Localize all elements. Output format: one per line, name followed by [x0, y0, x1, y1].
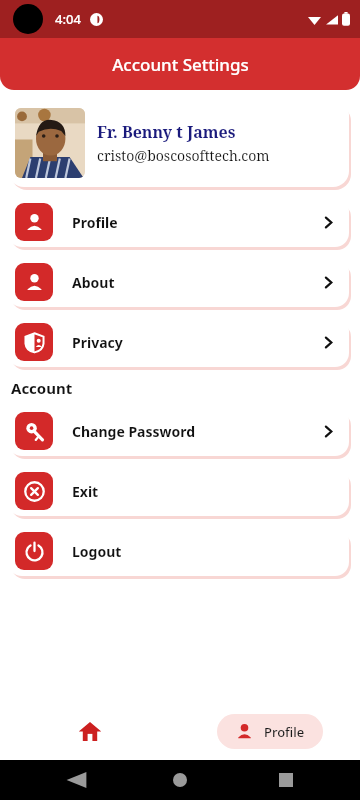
staticText: Logout	[72, 542, 122, 561]
staticText: Fr. Benny t James	[97, 121, 236, 143]
staticText: Privacy	[72, 333, 123, 352]
button[interactable]: Logout	[0, 526, 360, 576]
button[interactable]: Profile	[217, 714, 323, 749]
button[interactable]: Exit	[0, 466, 360, 516]
staticText: Profile	[72, 213, 118, 232]
button[interactable]: Profile	[0, 197, 360, 247]
button[interactable]: Home	[0, 702, 180, 760]
staticText: Change Password	[72, 422, 196, 441]
button[interactable]: About	[0, 257, 360, 307]
button[interactable]: Change Password	[0, 406, 360, 456]
staticText: cristo@boscosofttech.com	[97, 146, 270, 165]
staticText: Profile	[264, 723, 305, 741]
button[interactable]: Privacy	[0, 317, 360, 367]
staticText: About	[72, 273, 115, 292]
staticText: Account Settings	[112, 53, 249, 76]
staticText: Account	[11, 378, 73, 398]
staticText: 4:04	[55, 10, 81, 28]
staticText: Exit	[72, 482, 99, 501]
